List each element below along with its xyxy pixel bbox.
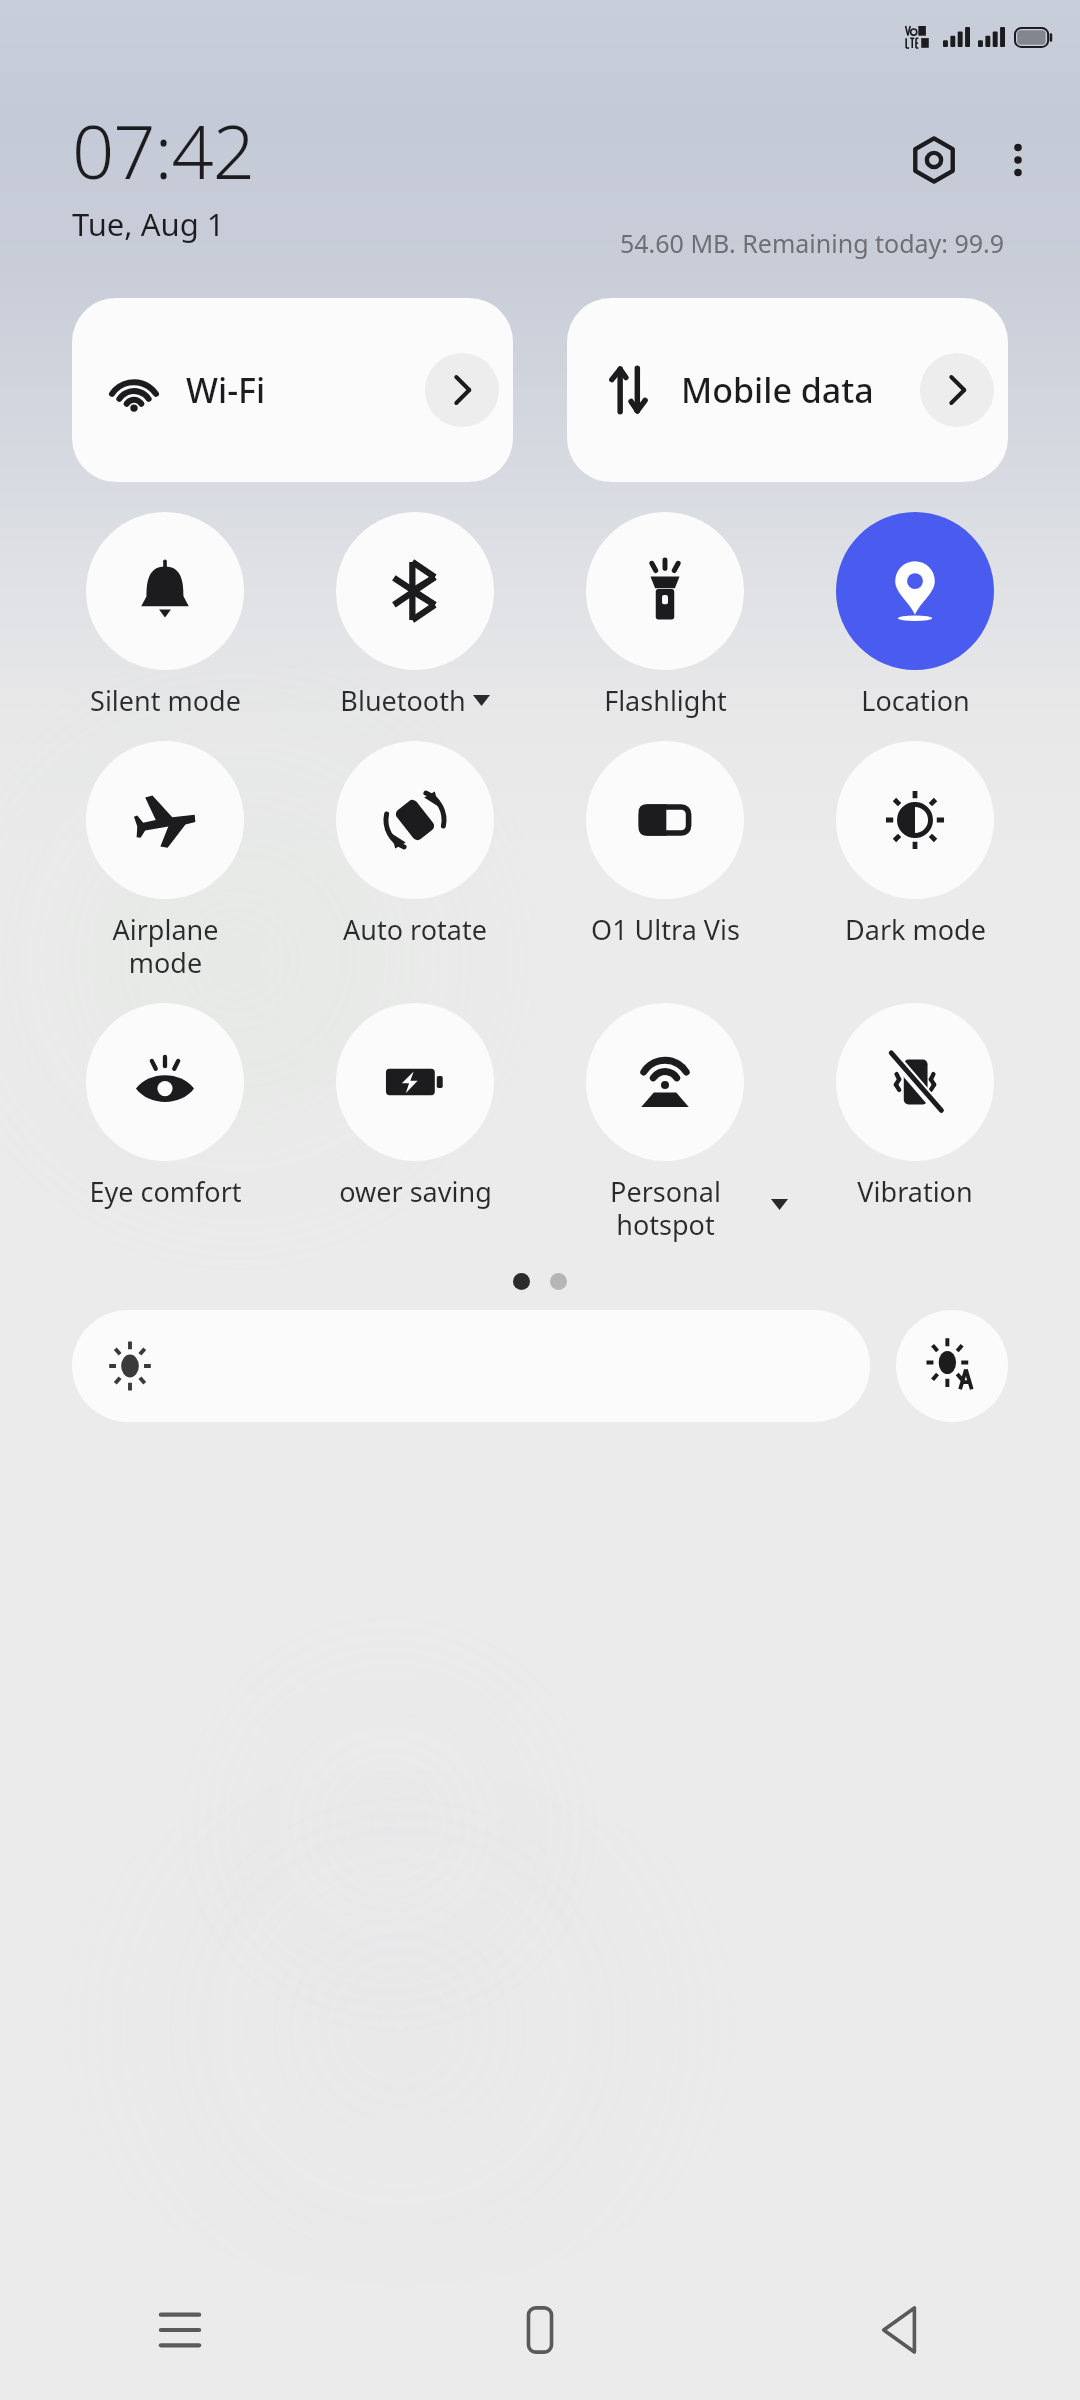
button[interactable]: Flashlight bbox=[540, 508, 790, 723]
button[interactable]: Home bbox=[360, 2260, 720, 2400]
button[interactable]: Settings bbox=[892, 118, 976, 202]
staticText: Mobile data bbox=[681, 367, 874, 413]
staticText: Tue, Aug 1 bbox=[72, 203, 225, 245]
staticText: Airplane mode bbox=[112, 911, 219, 981]
button[interactable]: Silent mode bbox=[40, 508, 290, 723]
staticText: Personal hotspot bbox=[610, 1173, 721, 1243]
button[interactable]: Recent apps bbox=[0, 2260, 360, 2400]
button[interactable]: Airplane mode bbox=[40, 737, 290, 985]
staticText: 54.60 MB. Remaining today: 99.9 bbox=[620, 226, 1005, 260]
button[interactable]: Brightness bbox=[72, 1310, 870, 1422]
staticText: Auto rotate bbox=[343, 911, 487, 948]
button[interactable]: ower saving bbox=[290, 999, 540, 1214]
staticText: Bluetooth bbox=[340, 682, 466, 719]
staticText: Eye comfort bbox=[89, 1173, 242, 1210]
button[interactable]: O1 Ultra Vis bbox=[540, 737, 790, 952]
button[interactable]: More options bbox=[976, 118, 1060, 202]
staticText: O1 Ultra Vis bbox=[591, 911, 740, 948]
staticText: 07:42 bbox=[72, 100, 255, 201]
button[interactable]: Auto rotate bbox=[290, 737, 540, 952]
button[interactable]: Auto brightness bbox=[896, 1310, 1008, 1422]
staticText: Wi-Fi bbox=[186, 367, 266, 413]
button[interactable]: Location bbox=[790, 508, 1040, 723]
button[interactable]: Mobile data bbox=[567, 298, 1008, 482]
button[interactable]: Back bbox=[720, 2260, 1080, 2400]
staticText: Location bbox=[861, 682, 970, 719]
button[interactable]: Vibration bbox=[790, 999, 1040, 1214]
staticText: Flashlight bbox=[604, 682, 727, 719]
staticText: Dark mode bbox=[845, 911, 986, 948]
button[interactable]: Wi-Fi bbox=[72, 298, 513, 482]
staticText: Silent mode bbox=[90, 682, 241, 719]
button[interactable]: Eye comfort bbox=[40, 999, 290, 1214]
button[interactable]: Bluetooth bbox=[290, 508, 540, 723]
button[interactable]: Personal hotspot bbox=[540, 999, 790, 1247]
staticText: Vibration bbox=[857, 1173, 973, 1210]
button[interactable]: Dark mode bbox=[790, 737, 1040, 952]
staticText: ower saving bbox=[339, 1173, 492, 1210]
